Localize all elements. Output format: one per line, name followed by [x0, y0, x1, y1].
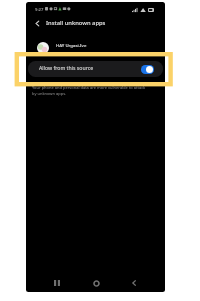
button[interactable]: Back [31, 17, 44, 30]
button[interactable]: Recents [50, 276, 64, 290]
staticText: Your phone and personal data are more vu… [32, 85, 146, 90]
staticText: 9:27 [35, 7, 44, 13]
button[interactable]: Home [89, 276, 103, 290]
button[interactable]: Allow from this source [28, 61, 163, 77]
staticText: Allow from this source [39, 64, 94, 71]
button[interactable]: Back [127, 276, 141, 290]
button[interactable]: HAY Urgasi-Ive [26, 37, 165, 58]
staticText: Install unknown apps [46, 19, 106, 27]
staticText: HAY Urgasi-Ive [56, 42, 87, 48]
staticText: by unknown apps. [32, 91, 67, 96]
